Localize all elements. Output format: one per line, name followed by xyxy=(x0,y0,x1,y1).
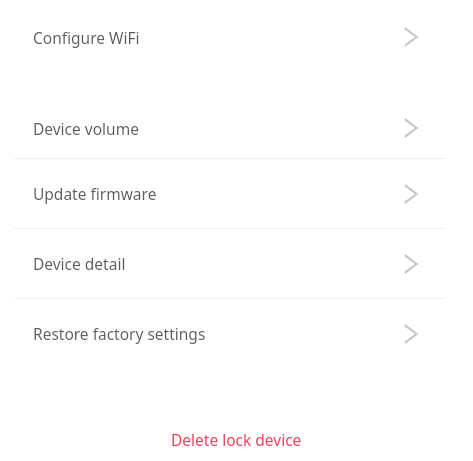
button[interactable]: Delete lock device xyxy=(0,420,473,458)
button[interactable]: Restore factory settings xyxy=(0,299,473,368)
staticText: Update firmware xyxy=(33,183,157,204)
staticText: Delete lock device xyxy=(171,429,302,450)
staticText: Device detail xyxy=(33,253,126,274)
staticText: Restore factory settings xyxy=(33,323,206,344)
button[interactable]: Device volume xyxy=(0,98,473,158)
button[interactable]: Device detail xyxy=(0,229,473,298)
button[interactable]: Configure WiFi xyxy=(0,10,473,64)
staticText: Device volume xyxy=(33,118,139,139)
button[interactable]: Update firmware xyxy=(0,159,473,228)
staticText: Configure WiFi xyxy=(33,27,140,48)
